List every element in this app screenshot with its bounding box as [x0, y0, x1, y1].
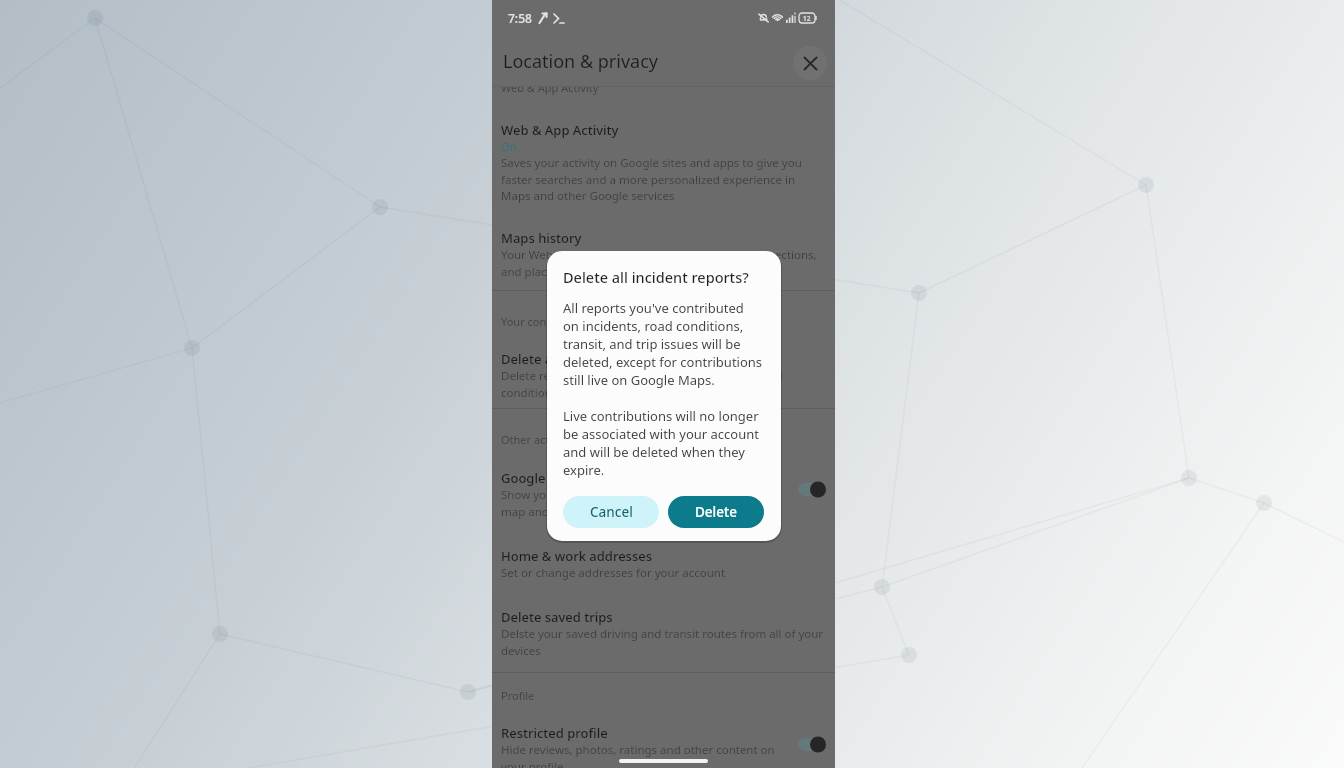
staticText: Restricted profile — [501, 724, 608, 742]
button[interactable]: Toggle — [798, 737, 825, 752]
staticText: On — [501, 139, 518, 155]
staticText: Your Web & App Activity for Maps. It's s… — [501, 247, 817, 279]
staticText: Show your Location History timeline on t… — [501, 487, 734, 519]
staticText: Delete saved trips — [501, 608, 613, 626]
staticText: 7:58 — [508, 10, 532, 26]
button[interactable]: Delete all incident reports — [492, 350, 835, 400]
staticText: Cancel — [590, 503, 633, 521]
staticText: Hide reviews, photos, ratings and other … — [501, 742, 775, 768]
staticText: 12 — [803, 14, 811, 23]
staticText: Profile — [501, 688, 535, 703]
staticText: Web & App Activity — [501, 80, 599, 95]
staticText: Delete all incident reports? — [563, 267, 749, 287]
staticText: Web & App Activity — [501, 121, 619, 139]
staticText: Delete all incident reports — [501, 350, 662, 368]
button[interactable]: Google Location History — [492, 469, 835, 519]
button[interactable]: Toggle — [798, 482, 825, 497]
staticText: All reports you've contributed on incide… — [563, 299, 763, 389]
staticText: Saves your activity on Google sites and … — [501, 155, 802, 203]
staticText: Google Location History — [501, 469, 651, 487]
staticText: Home & work addresses — [501, 547, 653, 565]
button[interactable]: Close — [793, 46, 827, 80]
staticText: Other activity — [501, 432, 571, 447]
staticText: Delete reports you've contributed on inc… — [501, 368, 783, 400]
button[interactable]: Home & work addresses — [492, 547, 835, 581]
staticText: Delete — [695, 503, 737, 521]
staticText: Maps history — [501, 229, 582, 247]
staticText: Set or change addresses for your account — [501, 565, 726, 581]
button[interactable]: Cancel — [563, 496, 659, 528]
staticText: Delste your saved driving and transit ro… — [501, 626, 824, 658]
button[interactable]: Delete — [668, 496, 764, 528]
staticText: Live contributions will no longer be ass… — [563, 407, 759, 479]
button[interactable]: Delete saved trips — [492, 608, 835, 658]
staticText: Your contributions — [501, 314, 597, 329]
button[interactable]: Restricted profile — [492, 724, 835, 768]
staticText: Location & privacy — [503, 49, 658, 74]
button[interactable]: Web & App Activity — [492, 121, 835, 203]
button[interactable]: Maps history — [492, 229, 835, 279]
